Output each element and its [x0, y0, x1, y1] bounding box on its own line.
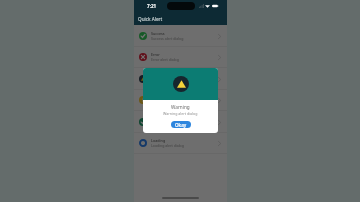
staticText: Success alert dialog	[151, 36, 184, 41]
staticText: Loading	[151, 138, 166, 143]
button[interactable]: Warning	[134, 69, 227, 90]
staticText: 7:21	[147, 3, 157, 9]
staticText: Error	[151, 52, 160, 57]
button[interactable]: Success	[134, 26, 227, 47]
staticText: Confirm alert dialog	[151, 122, 184, 127]
staticText: Error alert dialog	[151, 57, 179, 62]
button[interactable]: Confirm	[134, 112, 227, 133]
button[interactable]: Loading	[134, 133, 227, 154]
staticText: Warning	[171, 104, 190, 110]
button[interactable]: Okay	[171, 121, 191, 128]
staticText: Loading alert dialog	[151, 143, 184, 148]
button[interactable]: Error	[134, 47, 227, 68]
staticText: Okay	[175, 122, 187, 128]
staticText: Quick Alert	[138, 16, 163, 22]
staticText: Warning alert dialog	[163, 111, 198, 116]
staticText: Success	[151, 31, 165, 36]
staticText: Warning alert dialog	[151, 79, 185, 84]
button[interactable]: Info	[134, 90, 227, 111]
